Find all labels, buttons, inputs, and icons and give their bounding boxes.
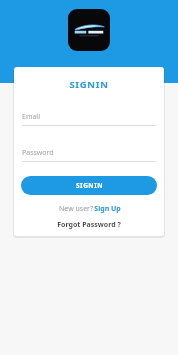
button[interactable]: Forgot Password ? <box>14 220 164 230</box>
other: App logo <box>68 9 110 51</box>
staticText: New user? <box>58 204 94 214</box>
button[interactable]: New user? <box>14 204 164 214</box>
staticText: Password <box>22 148 156 158</box>
staticText: SIGNIN <box>76 181 103 190</box>
staticText: Sign Up <box>94 204 121 214</box>
staticText: Forgot Password ? <box>57 220 121 230</box>
button[interactable]: Password <box>22 148 156 162</box>
button[interactable]: Email <box>22 112 156 126</box>
button[interactable]: SIGNIN <box>21 176 157 195</box>
staticText: SIGNIN <box>14 78 164 91</box>
staticText: Email <box>22 112 156 122</box>
